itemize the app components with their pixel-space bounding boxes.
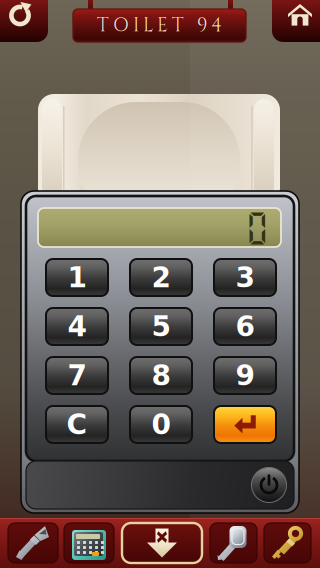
button[interactable]: Notepad	[64, 523, 114, 563]
button[interactable]: Power	[248, 464, 290, 506]
staticText: T O I L E T 9 4	[97, 13, 222, 38]
button[interactable]: Put away	[122, 523, 202, 563]
button[interactable]: 2	[130, 259, 192, 296]
button[interactable]: 8	[130, 357, 192, 394]
button[interactable]: C	[46, 406, 108, 443]
staticText: 8	[151, 359, 170, 392]
staticText: 9	[235, 359, 254, 392]
staticText: 0	[245, 208, 270, 247]
button[interactable]: Home	[272, 0, 320, 42]
button[interactable]: Enter	[214, 406, 276, 443]
button[interactable]: 1	[46, 259, 108, 296]
staticText: 4	[67, 310, 86, 343]
button[interactable]: Restart	[0, 0, 48, 42]
staticText: 0	[151, 408, 170, 441]
button[interactable]: 5	[130, 308, 192, 345]
staticText: 6	[235, 310, 254, 343]
button[interactable]: Chisel	[8, 523, 58, 563]
staticText: 7	[67, 359, 86, 392]
button[interactable]: 9	[214, 357, 276, 394]
staticText: C	[66, 408, 87, 441]
button[interactable]: 7	[46, 357, 108, 394]
button[interactable]: Brass key	[264, 523, 311, 563]
button[interactable]: 4	[46, 308, 108, 345]
button[interactable]: 6	[214, 308, 276, 345]
button[interactable]: 3	[214, 259, 276, 296]
staticText: 2	[151, 261, 170, 294]
staticText: 5	[151, 310, 170, 343]
staticText: 3	[235, 261, 254, 294]
button[interactable]: Car key	[210, 523, 257, 563]
staticText: 1	[67, 261, 86, 294]
button[interactable]: 0	[130, 406, 192, 443]
